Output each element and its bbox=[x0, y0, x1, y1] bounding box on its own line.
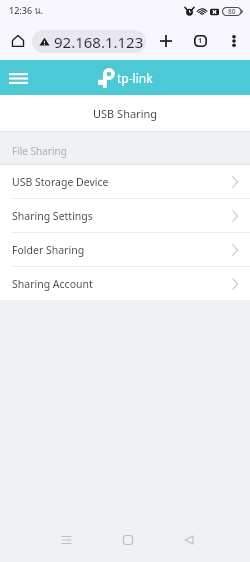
button[interactable]: Sharing Account bbox=[0, 267, 250, 300]
button[interactable]: Menu bbox=[6, 66, 30, 90]
button[interactable]: Home bbox=[97, 524, 158, 556]
button[interactable]: More options bbox=[225, 26, 243, 56]
button[interactable]: Home bbox=[9, 32, 27, 50]
button[interactable]: Recents bbox=[36, 524, 97, 556]
staticText: 80 bbox=[228, 7, 236, 16]
button[interactable]: Folder Sharing bbox=[0, 233, 250, 266]
staticText: 92.168.1.123 bbox=[54, 32, 144, 52]
button[interactable]: Sharing Settings bbox=[0, 199, 250, 232]
staticText: 1 bbox=[198, 36, 203, 46]
button[interactable]: USB Storage Device bbox=[0, 165, 250, 198]
staticText: Sharing Settings bbox=[12, 209, 93, 223]
staticText: Sharing Account bbox=[12, 277, 93, 291]
staticText: 12:36 น. bbox=[9, 4, 43, 18]
button[interactable]: 92.168.1.123 bbox=[32, 30, 146, 53]
button[interactable]: Tabs bbox=[189, 26, 211, 56]
staticText: USB Sharing bbox=[93, 106, 158, 121]
staticText: File Sharing bbox=[12, 144, 67, 158]
staticText: USB Storage Device bbox=[12, 175, 109, 189]
button[interactable]: Back bbox=[158, 524, 219, 556]
button[interactable]: New tab bbox=[154, 26, 178, 56]
staticText: tp-link bbox=[117, 70, 153, 86]
staticText: Folder Sharing bbox=[12, 243, 85, 257]
